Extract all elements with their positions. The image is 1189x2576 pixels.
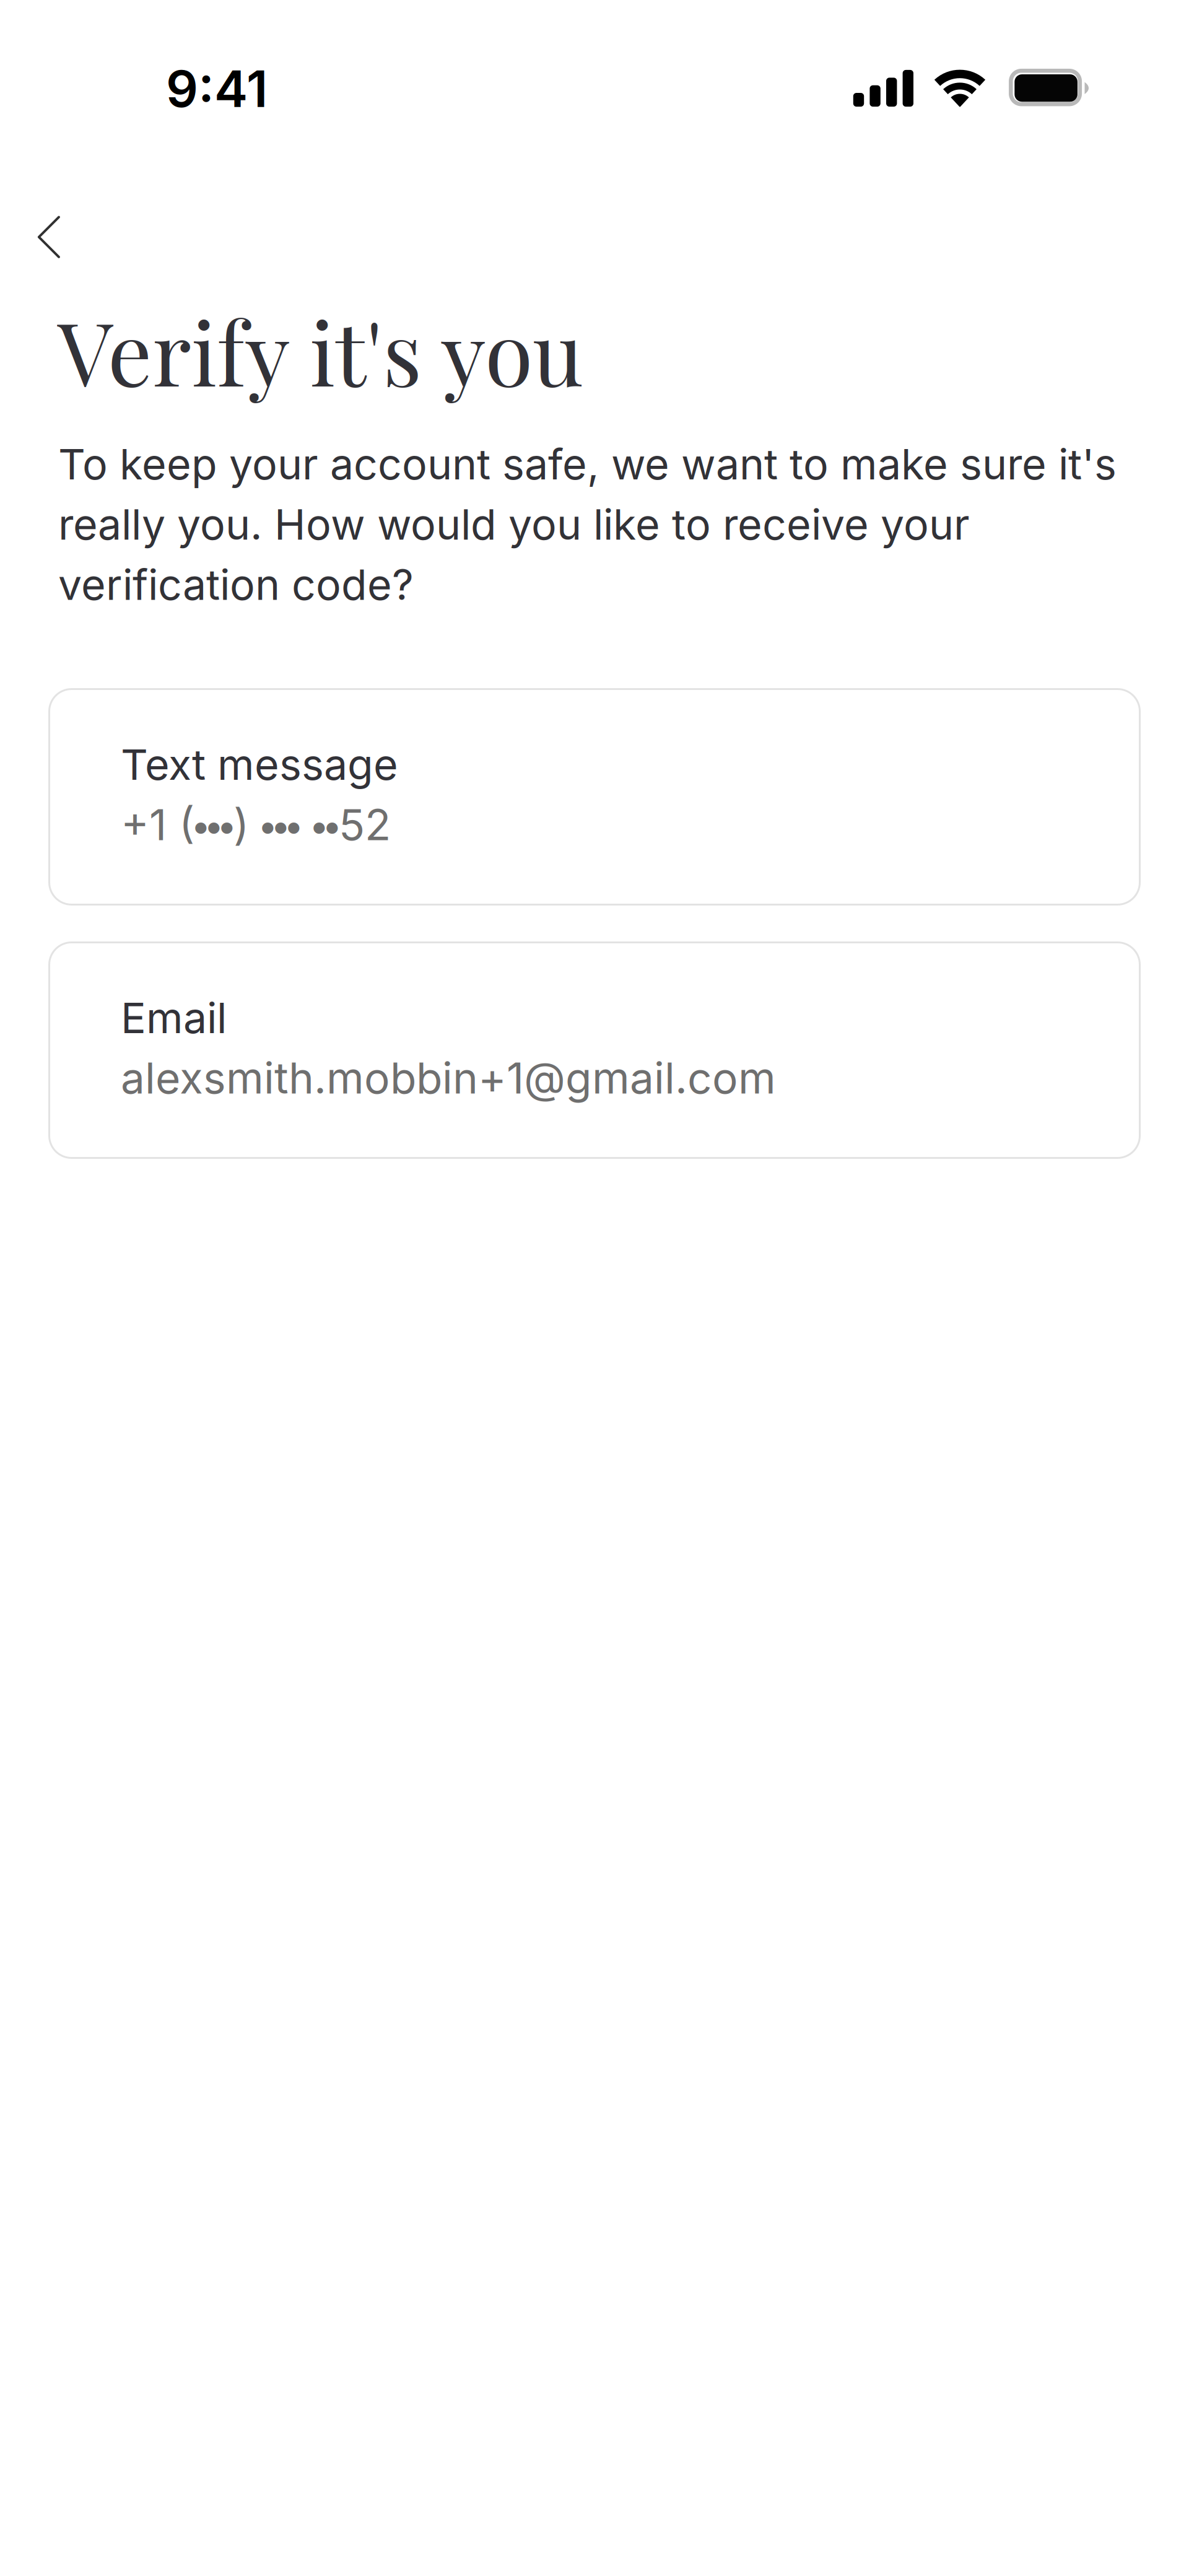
staticText: Verify it's you [58,292,583,408]
button[interactable]: Email [48,941,1141,1159]
staticText: 9:41 [166,58,268,119]
staticText: Email [121,992,227,1043]
staticText: Text message [121,739,398,790]
staticText: To keep your account safe, we want to ma… [58,439,1117,610]
staticText: alexsmith.mobbin+1@gmail.com [121,1052,776,1104]
button[interactable]: Text message [48,688,1141,906]
staticText: +1 (⦁⦁⦁) ⦁⦁⦁ ⦁⦁52 [121,799,391,851]
button[interactable]: Back [11,196,98,278]
